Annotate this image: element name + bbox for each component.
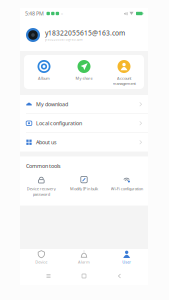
staticText: Device (35, 259, 47, 264)
button[interactable]: Wi-Fi configuration (105, 176, 148, 198)
button[interactable]: Modify IP in bulk (63, 176, 105, 198)
button[interactable]: Home (77, 267, 91, 285)
staticText: Device recovery (27, 186, 56, 191)
staticText: User (122, 259, 131, 264)
button[interactable]: Album (24, 60, 64, 84)
button[interactable]: My download (20, 95, 148, 114)
staticText: My download (36, 101, 68, 108)
button[interactable]: Local configuration (20, 114, 148, 133)
staticText: Account (117, 75, 131, 81)
staticText: Alarm (78, 259, 90, 264)
staticText: Album (38, 75, 50, 81)
button[interactable]: Back (112, 267, 126, 285)
button[interactable]: Account (104, 60, 144, 84)
staticText: y18322055615@163.com (45, 29, 125, 37)
staticText: 5:48 PM (25, 10, 44, 17)
staticText: Local configuration (36, 120, 82, 127)
button[interactable]: Alarm (63, 250, 105, 265)
staticText: Common tools (26, 162, 61, 170)
button[interactable]: Device recovery (20, 176, 63, 198)
staticText: password (33, 192, 50, 197)
button[interactable]: Device (20, 250, 63, 265)
staticText: Wi-Fi configuration (111, 186, 143, 191)
button[interactable]: User (105, 250, 148, 265)
staticText: My share (75, 75, 92, 81)
staticText: ·· (61, 10, 63, 17)
button[interactable]: Recent apps (41, 267, 55, 285)
staticText: management (112, 81, 135, 86)
staticText: Modify IP in bulk (70, 186, 98, 191)
button[interactable]: My share (64, 60, 104, 84)
button[interactable]: About us (20, 133, 148, 151)
staticText: y18322055615@163.com (45, 38, 82, 41)
staticText: About us (36, 139, 57, 146)
